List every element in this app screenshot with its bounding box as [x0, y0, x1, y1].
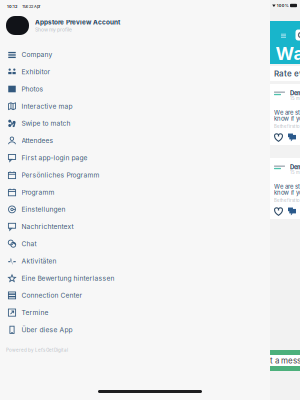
staticText: Swipe to match [21, 119, 70, 127]
staticText: We are still looking for you. Let us [274, 183, 300, 190]
button[interactable]: Chat [0, 235, 270, 252]
button[interactable]: Company [0, 46, 270, 63]
staticText: Exhibitor [21, 68, 50, 76]
staticText: First app-login page [21, 154, 87, 162]
staticText: Aktivitäten [21, 257, 56, 265]
staticText: Eine Bewertung hinterlassen [21, 274, 114, 282]
staticText: Chat [21, 240, 36, 248]
button[interactable]: Exhibitor [0, 63, 270, 80]
button[interactable]: Attendees [0, 132, 270, 149]
staticText: 15 minutes ago [290, 170, 300, 175]
staticText: know if you are interested. [274, 189, 300, 196]
button[interactable]: Post a message [252, 355, 300, 366]
button[interactable]: Über diese App [0, 321, 270, 338]
staticText: 100% [277, 3, 289, 8]
staticText: Über diese App [21, 326, 72, 334]
staticText: Einstellungen [21, 205, 65, 213]
button[interactable]: Termine [0, 304, 270, 321]
button[interactable]: Menu [278, 30, 288, 40]
staticText: Interactive map [21, 102, 72, 110]
staticText: Powered by Let's Get Digital [6, 347, 68, 353]
staticText: Appstore Preview Account [35, 18, 120, 26]
button[interactable]: Einstellungen [0, 201, 270, 218]
staticText: Programm [21, 188, 54, 196]
button[interactable]: Photos [0, 80, 270, 98]
button[interactable]: Programm [0, 184, 270, 201]
staticText: Nachrichtentext [21, 223, 73, 231]
button[interactable]: Comment [287, 132, 297, 142]
button[interactable]: Appstore Preview Account [0, 13, 270, 38]
button[interactable]: Like [273, 206, 283, 216]
staticText: Company [21, 51, 52, 59]
staticText: Wall [275, 43, 300, 64]
staticText: 15 minutes ago [290, 96, 300, 101]
button[interactable]: Interactive map [0, 98, 270, 115]
button[interactable]: Like [273, 132, 283, 142]
staticText: 10:12 [7, 4, 17, 9]
staticText: Be the first to like this [274, 198, 300, 203]
staticText: know if you are interested. [274, 115, 300, 122]
staticText: Show my profile [35, 27, 72, 33]
staticText: Photos [21, 85, 43, 93]
staticText: Be the first to like this [274, 124, 300, 129]
staticText: Rate event [274, 69, 300, 78]
staticText: Demo Company [290, 163, 300, 171]
button[interactable]: Eine Bewertung hinterlassen [0, 270, 270, 287]
staticText: Tue 22 Apr [22, 4, 41, 9]
staticText: Termine [21, 309, 48, 317]
staticText: Attendees [21, 137, 53, 145]
staticText: Demo Company [290, 89, 300, 97]
button[interactable]: Swipe to match [0, 115, 270, 132]
button[interactable]: Nachrichtentext [0, 218, 270, 235]
button[interactable]: First app-login page [0, 149, 270, 166]
button[interactable]: Persönliches Programm [0, 166, 270, 184]
button[interactable]: Search [295, 29, 300, 40]
button[interactable]: Aktivitäten [0, 252, 270, 270]
staticText: Persönliches Programm [21, 171, 99, 179]
button[interactable]: Connection Center [0, 287, 270, 304]
button[interactable]: Comment [287, 206, 297, 216]
staticText: We are still looking for you. Let us [274, 109, 300, 116]
staticText: Post a message [256, 356, 300, 365]
staticText: Connection Center [21, 291, 82, 299]
